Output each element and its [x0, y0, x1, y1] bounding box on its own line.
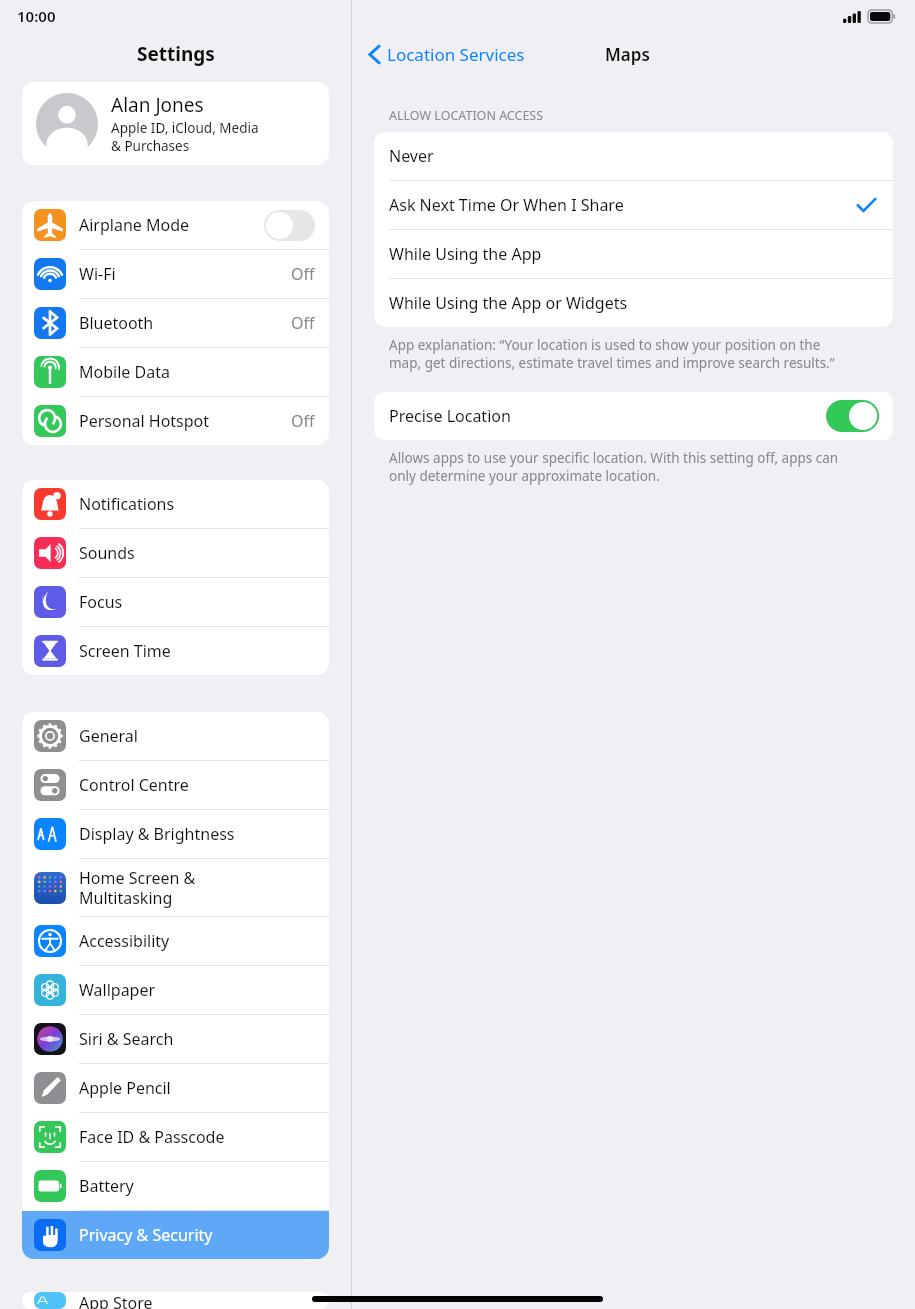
staticText: Personal Hotspot [79, 410, 291, 432]
staticText: App Store [79, 1292, 315, 1309]
button[interactable]: Never [374, 132, 893, 180]
button[interactable]: Focus [22, 578, 329, 626]
button[interactable]: App Store [22, 1292, 329, 1309]
staticText: Off [291, 263, 315, 285]
staticText: Apple ID, iCloud, Media [111, 119, 259, 137]
button[interactable]: Sounds [22, 529, 329, 577]
staticText: Ask Next Time Or When I Share [389, 194, 857, 216]
button[interactable]: Notifications [22, 480, 329, 528]
staticText: ALLOW LOCATION ACCESS [389, 107, 544, 124]
staticText: Siri & Search [79, 1028, 315, 1050]
staticText: Mobile Data [79, 361, 315, 383]
button[interactable]: Precise Location [374, 392, 893, 440]
staticText: & Purchases [111, 137, 190, 155]
button[interactable]: Ask Next Time Or When I Share [374, 181, 893, 229]
staticText: Bluetooth [79, 312, 291, 334]
staticText: Sounds [79, 542, 315, 564]
button[interactable]: Airplane Mode [22, 201, 329, 249]
staticText: Allows apps to use your specific locatio… [389, 449, 839, 485]
staticText: App explanation: “Your location is used … [389, 336, 835, 372]
staticText: Face ID & Passcode [79, 1126, 315, 1148]
staticText: Display & Brightness [79, 823, 315, 845]
staticText: Focus [79, 591, 315, 613]
button[interactable]: Accessibility [22, 917, 329, 965]
button[interactable]: Airplane Mode toggle [264, 210, 315, 241]
button[interactable]: Face ID & Passcode [22, 1113, 329, 1161]
button[interactable]: Display & Brightness [22, 810, 329, 858]
button[interactable]: Precise Location toggle [826, 400, 879, 432]
button[interactable]: While Using the App or Widgets [374, 279, 893, 327]
staticText: While Using the App [389, 243, 876, 265]
staticText: Off [291, 410, 315, 432]
button[interactable]: Privacy & Security [22, 1211, 329, 1259]
staticText: Screen Time [79, 640, 315, 662]
staticText: Alan Jones [111, 92, 204, 118]
button[interactable]: Wi-Fi [22, 250, 329, 298]
staticText: Privacy & Security [79, 1224, 315, 1246]
button[interactable]: Home Screen & Multitasking [22, 859, 329, 916]
button[interactable]: Wallpaper [22, 966, 329, 1014]
button[interactable]: Mobile Data [22, 348, 329, 396]
staticText: Wallpaper [79, 979, 315, 1001]
button[interactable]: Alan Jones [22, 82, 329, 165]
button[interactable]: Personal Hotspot [22, 397, 329, 445]
staticText: Maps [605, 43, 650, 66]
button[interactable]: Screen Time [22, 627, 329, 675]
staticText: Notifications [79, 493, 315, 515]
staticText: Wi-Fi [79, 263, 291, 285]
staticText: Location Services [387, 43, 525, 66]
staticText: Settings [137, 41, 215, 67]
button[interactable]: Apple Pencil [22, 1064, 329, 1112]
staticText: Battery [79, 1175, 315, 1197]
staticText: Control Centre [79, 774, 315, 796]
staticText: Home Screen & Multitasking [79, 867, 315, 908]
staticText: Apple Pencil [79, 1077, 315, 1099]
staticText: 10:00 [17, 6, 56, 26]
button[interactable]: Siri & Search [22, 1015, 329, 1063]
staticText: Precise Location [389, 405, 826, 427]
button[interactable]: General [22, 712, 329, 760]
staticText: Never [389, 145, 876, 167]
staticText: Airplane Mode [79, 214, 264, 236]
staticText: Accessibility [79, 930, 315, 952]
button[interactable]: Bluetooth [22, 299, 329, 347]
button[interactable]: Control Centre [22, 761, 329, 809]
button[interactable]: Location Services [365, 40, 529, 69]
staticText: While Using the App or Widgets [389, 292, 876, 314]
staticText: Off [291, 312, 315, 334]
staticText: General [79, 725, 315, 747]
button[interactable]: While Using the App [374, 230, 893, 278]
button[interactable]: Battery [22, 1162, 329, 1210]
